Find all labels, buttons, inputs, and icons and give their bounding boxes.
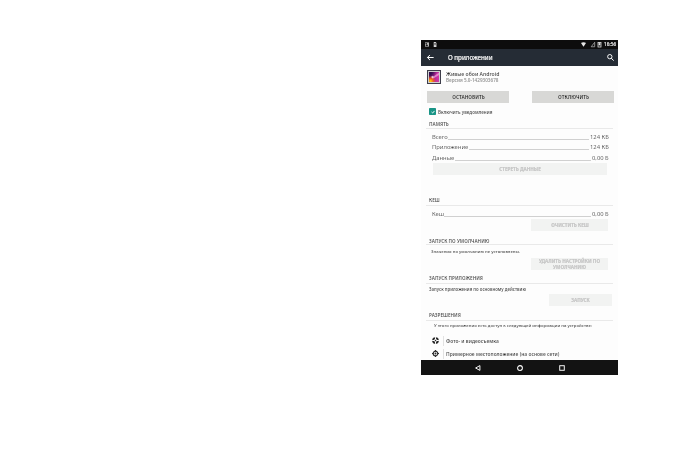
staticText: Включить уведомления — [438, 109, 493, 115]
button[interactable]: УДАЛИТЬ НАСТРОЙКИ ПО УМОЛЧАНИЮ — [531, 258, 608, 270]
staticText: 16:56 — [604, 41, 617, 47]
staticText: О приложении — [448, 53, 493, 61]
staticText: Всего — [432, 133, 448, 141]
button[interactable]: ОЧИСТИТЬ КЕШ — [531, 219, 608, 231]
button[interactable]: ЗАПУСК — [549, 294, 612, 306]
staticText: 124 КБ — [590, 133, 609, 141]
button[interactable]: Back — [468, 360, 488, 375]
button[interactable]: Search — [603, 49, 617, 66]
staticText: Значения по умолчанию не установлены. — [431, 248, 521, 254]
staticText: КЕШ — [429, 197, 440, 203]
staticText: ПАМЯТЬ — [429, 121, 449, 127]
staticText: ЗАПУСК — [571, 297, 590, 303]
staticText: ЗАПУСК ПРИЛОЖЕНИЯ — [429, 275, 484, 281]
staticText: Примерное местоположение (на основе сети… — [446, 351, 560, 358]
staticText: 0,00 Б — [592, 210, 609, 218]
button[interactable]: Home — [510, 360, 530, 375]
button[interactable]: СТЕРЕТЬ ДАННЫЕ — [433, 163, 607, 175]
staticText: УДАЛИТЬ НАСТРОЙКИ ПО УМОЛЧАНИЮ — [533, 258, 606, 270]
staticText: Версия 5.0-1429303678 — [446, 77, 499, 83]
staticText: 124 КБ — [590, 143, 609, 151]
staticText: ОСТАНОВИТЬ — [452, 94, 485, 100]
staticText: ОТКЛЮЧИТЬ — [558, 94, 589, 100]
staticText: Приложение — [432, 143, 469, 151]
staticText: СТЕРЕТЬ ДАННЫЕ — [499, 166, 541, 172]
button[interactable]: Recent apps — [552, 360, 572, 375]
button[interactable]: Фото- и видеосъемка — [421, 334, 618, 347]
staticText: ОЧИСТИТЬ КЕШ — [551, 222, 589, 228]
staticText: Данные — [432, 154, 455, 162]
staticText: Запуск приложения по основному действию — [429, 286, 526, 292]
button[interactable]: Back — [423, 49, 437, 66]
button[interactable]: Примерное местоположение (на основе сети… — [421, 347, 618, 360]
staticText: Кеш — [432, 210, 444, 218]
staticText: Фото- и видеосъемка — [446, 338, 499, 345]
staticText: РАЗРЕШЕНИЯ — [429, 312, 461, 318]
button[interactable]: Включить уведомления — [428, 106, 514, 116]
button[interactable]: ОСТАНОВИТЬ — [427, 91, 509, 103]
staticText: ЗАПУСК ПО УМОЛЧАНИЮ — [429, 238, 490, 244]
staticText: 0,00 Б — [592, 154, 609, 162]
staticText: Живые обои Android — [446, 71, 500, 78]
button[interactable]: ОТКЛЮЧИТЬ — [532, 91, 614, 103]
staticText: У этого приложения есть доступ к следующ… — [434, 323, 592, 329]
